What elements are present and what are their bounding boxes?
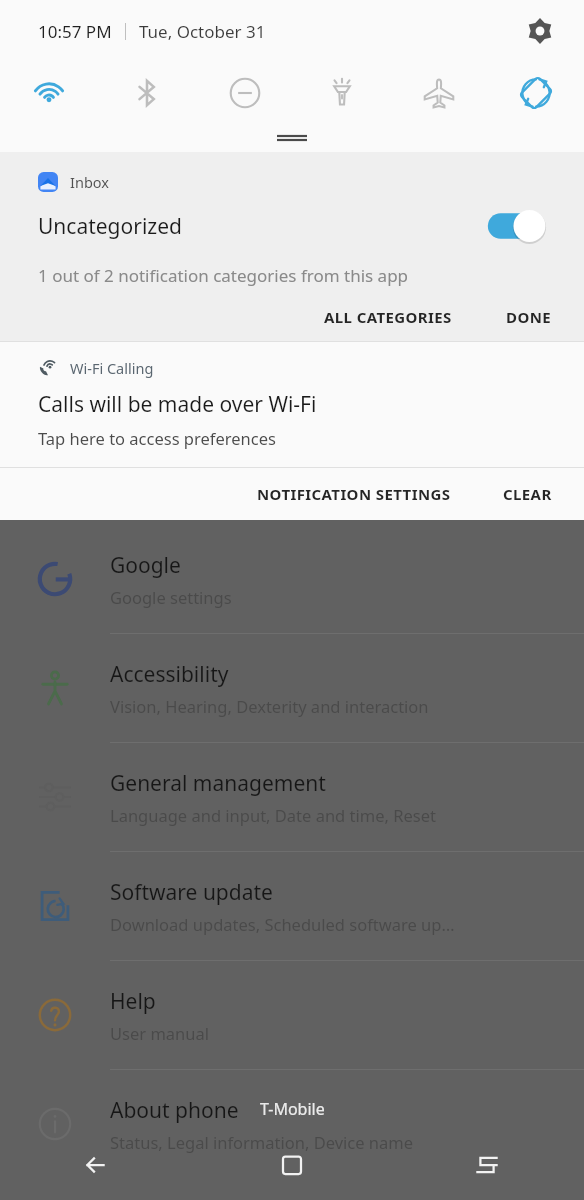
staticText: Calls will be made over Wi-Fi [38, 390, 317, 419]
button[interactable]: Airplane mode [390, 62, 487, 124]
staticText: Language and input, Date and time, Reset [110, 804, 436, 826]
button[interactable]: Toggle category [484, 206, 548, 246]
button[interactable]: Home [194, 1130, 389, 1200]
button[interactable]: Bluetooth [98, 62, 196, 124]
staticText: Tap here to access preferences [38, 427, 276, 449]
button[interactable]: Settings [518, 9, 562, 53]
button[interactable]: Back [0, 1130, 194, 1200]
staticText: User manual [110, 1022, 209, 1044]
staticText: Status, Legal information, Device name [110, 1131, 414, 1153]
staticText: Tue, October 31 [139, 20, 266, 43]
staticText: ALL CATEGORIES [324, 307, 452, 327]
button[interactable]: Help [0, 961, 584, 1069]
button[interactable]: Auto rotate [487, 62, 584, 124]
staticText: Google [110, 551, 181, 580]
staticText: Help [110, 987, 156, 1016]
button[interactable]: ALL CATEGORIES [314, 301, 462, 333]
staticText: 10:57 PM [38, 20, 112, 43]
staticText: Inbox [70, 172, 109, 192]
button[interactable]: Recents [389, 1130, 584, 1200]
staticText: CLEAR [503, 484, 552, 504]
button[interactable]: Do not disturb [196, 62, 293, 124]
button[interactable]: Accessibility [0, 634, 584, 742]
staticText: Vision, Hearing, Dexterity and interacti… [110, 695, 429, 717]
staticText: Wi-Fi Calling [70, 358, 154, 378]
staticText: NOTIFICATION SETTINGS [257, 484, 451, 504]
staticText: Software update [110, 878, 273, 907]
button[interactable]: Flashlight [293, 62, 390, 124]
button[interactable]: CLEAR [493, 476, 562, 512]
staticText: 1 out of 2 notification categories from … [38, 264, 409, 287]
staticText: Accessibility [110, 660, 229, 689]
button[interactable]: Inbox [0, 152, 584, 341]
button[interactable]: DONE [496, 301, 562, 333]
staticText: Google settings [110, 586, 232, 608]
button[interactable]: Wi-Fi [0, 62, 98, 124]
button[interactable]: NOTIFICATION SETTINGS [247, 476, 461, 512]
button[interactable]: General management [0, 743, 584, 851]
button[interactable]: Google [0, 525, 584, 633]
staticText: General management [110, 769, 326, 798]
staticText: Uncategorized [38, 212, 484, 241]
staticText: About phone [110, 1096, 239, 1125]
staticText: DONE [506, 307, 552, 327]
staticText: T-Mobile [260, 1098, 325, 1120]
staticText: Download updates, Scheduled software up… [110, 913, 455, 935]
button[interactable]: Software update [0, 852, 584, 960]
button[interactable]: Wi-Fi Calling [0, 342, 584, 467]
button[interactable]: About phone [0, 1070, 584, 1178]
